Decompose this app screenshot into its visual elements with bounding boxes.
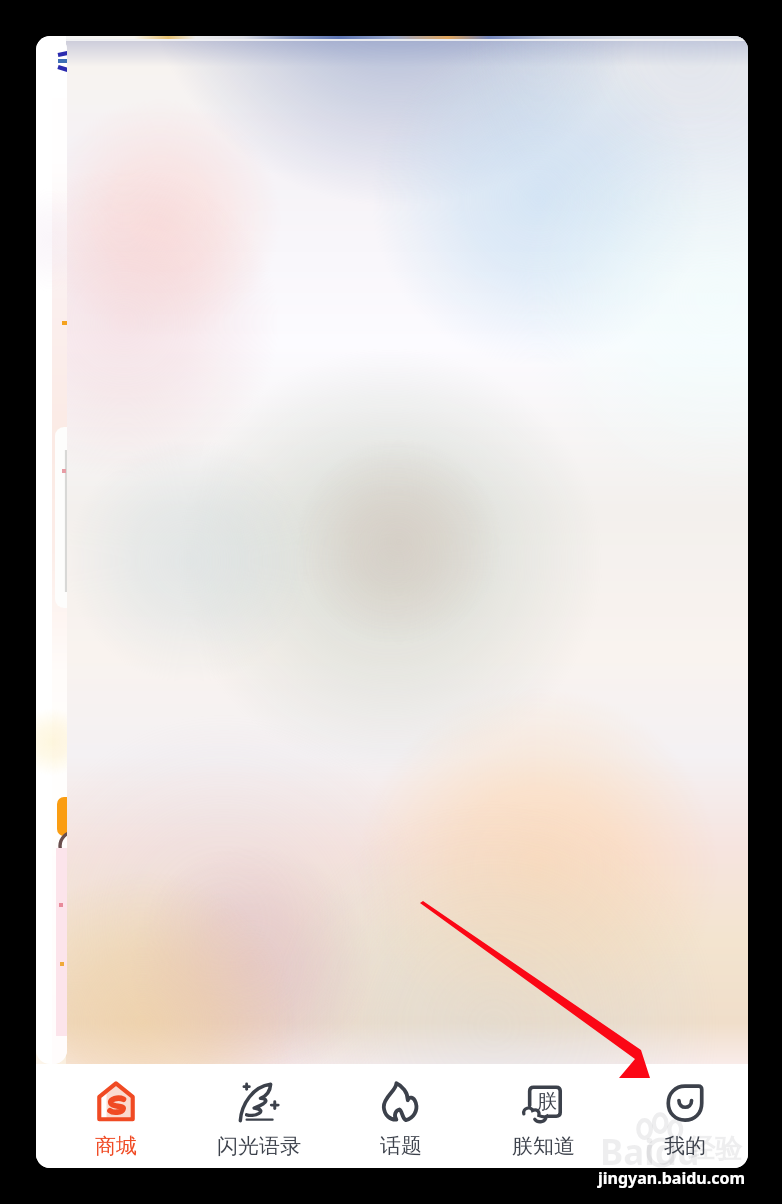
staticText: 闪光语录 xyxy=(217,1133,301,1159)
button[interactable]: 话题 xyxy=(330,1064,472,1159)
button[interactable]: 商城 xyxy=(44,1064,187,1159)
button[interactable]: 我的 xyxy=(614,1064,756,1159)
staticText: 朕 xyxy=(537,1089,557,1114)
staticText: jingyan.baidu.com xyxy=(598,1167,746,1189)
staticText: 朕知道 xyxy=(512,1133,575,1159)
staticText: 我的 xyxy=(664,1133,706,1159)
staticText: 经验 xyxy=(688,1132,742,1166)
button[interactable]: 朕 xyxy=(472,1064,614,1159)
button[interactable]: 闪光语录 xyxy=(187,1064,330,1159)
staticText: 话题 xyxy=(380,1133,422,1159)
staticText: 商城 xyxy=(95,1133,137,1159)
staticText: Baidu xyxy=(600,1128,700,1176)
